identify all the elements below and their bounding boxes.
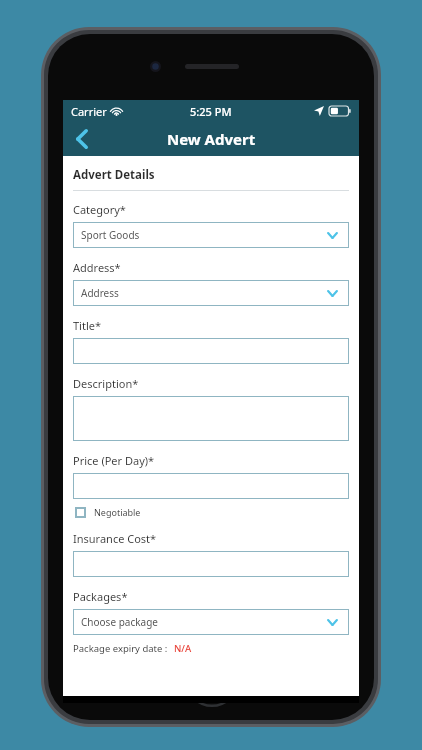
button[interactable] <box>73 396 349 441</box>
button[interactable]: Address <box>73 280 349 306</box>
button[interactable]: Choose package <box>73 609 349 635</box>
button[interactable]: Negotiable <box>73 504 143 520</box>
staticText: Carrier <box>71 104 107 119</box>
staticText: Price (Per Day)* <box>73 453 155 468</box>
staticText: Address <box>81 286 119 300</box>
button[interactable] <box>73 473 349 499</box>
staticText: Address* <box>73 260 121 275</box>
button[interactable] <box>73 338 349 364</box>
staticText: Choose package <box>81 615 158 629</box>
button[interactable] <box>73 551 349 577</box>
staticText: New Advert <box>167 129 256 149</box>
button[interactable]: Sport Goods <box>73 222 349 248</box>
staticText: Title* <box>73 318 102 333</box>
staticText: Negotiable <box>94 506 141 518</box>
staticText: Sport Goods <box>81 228 140 242</box>
staticText: N/A <box>174 642 192 655</box>
staticText: Advert Details <box>73 167 155 183</box>
staticText: Category* <box>73 202 126 217</box>
staticText: Description* <box>73 376 139 391</box>
staticText: Package expiry date : <box>73 642 168 655</box>
staticText: Packages* <box>73 589 128 604</box>
staticText: Insurance Cost* <box>73 531 157 546</box>
button[interactable]: Back <box>63 122 107 156</box>
staticText: 5:25 PM <box>190 104 232 119</box>
